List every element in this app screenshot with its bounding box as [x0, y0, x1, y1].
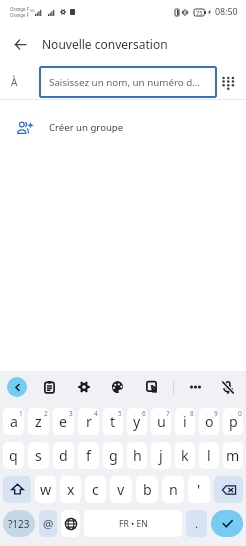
staticText: t [110, 412, 116, 431]
staticText: Saisissez un nom, un numéro d… [49, 76, 201, 89]
button[interactable]: d [53, 442, 74, 469]
button[interactable] [211, 510, 243, 537]
staticText: 3 [69, 409, 73, 418]
staticText: 2 [44, 409, 48, 418]
button[interactable]: Settings [74, 377, 94, 397]
button[interactable]: Microphone off [218, 377, 238, 397]
button[interactable]: ?123 [3, 510, 35, 537]
staticText: q [9, 446, 18, 465]
staticText: . [195, 516, 199, 532]
staticText: z [35, 412, 42, 431]
staticText: ?123 [8, 517, 30, 531]
button[interactable] [3, 476, 31, 503]
button[interactable]: v [110, 476, 132, 503]
staticText: f [86, 446, 91, 465]
staticText: FR • EN [119, 518, 148, 530]
button[interactable]: y [127, 408, 147, 435]
staticText: g [109, 446, 118, 465]
staticText: 1 [19, 409, 23, 418]
button[interactable]: . [186, 510, 207, 537]
staticText: l [207, 446, 211, 465]
button[interactable]: g [103, 442, 123, 469]
staticText: 4 [94, 409, 98, 418]
staticText: e [59, 412, 68, 431]
button[interactable]: f [78, 442, 99, 469]
button[interactable]: Back [6, 30, 34, 58]
staticText: x [67, 480, 75, 499]
staticText: 75 [196, 9, 203, 16]
staticText: o [205, 412, 214, 431]
button[interactable]: a [3, 408, 24, 435]
staticText: 9 [214, 409, 218, 418]
button[interactable]: p [223, 408, 243, 435]
button[interactable]: b [136, 476, 158, 503]
button[interactable]: Themes [107, 377, 127, 397]
staticText: Orange F [10, 6, 29, 12]
button[interactable]: j [151, 442, 171, 469]
button[interactable]: Créer un groupe [0, 100, 246, 154]
staticText: Nouvelle conversation [42, 36, 168, 52]
button[interactable]: Collapse toolbar [7, 377, 27, 397]
staticText: 0 [238, 409, 242, 418]
button[interactable]: e [53, 408, 74, 435]
button[interactable]: FR • EN [84, 510, 182, 537]
button[interactable]: l [199, 442, 219, 469]
staticText: m [226, 446, 240, 465]
button[interactable]: More options [185, 377, 205, 397]
button[interactable]: t [103, 408, 123, 435]
button[interactable]: x [60, 476, 81, 503]
button[interactable]: h [127, 442, 147, 469]
button[interactable]: z [28, 408, 49, 435]
staticText: j [159, 446, 163, 465]
button[interactable]: q [3, 442, 24, 469]
staticText: 6 [142, 409, 146, 418]
staticText: À [11, 75, 18, 89]
staticText: 7 [166, 409, 170, 418]
staticText: p [229, 412, 238, 431]
staticText: c [92, 480, 99, 499]
button[interactable] [214, 476, 243, 503]
staticText: u [157, 412, 166, 431]
staticText: r [86, 412, 92, 431]
staticText: 5G [30, 8, 35, 13]
button[interactable]: Clipboard [39, 377, 59, 397]
button[interactable]: Sticker [141, 377, 161, 397]
staticText: n [169, 480, 178, 499]
staticText: w [40, 480, 52, 499]
staticText: @ [43, 516, 54, 532]
button[interactable]: s [28, 442, 49, 469]
button[interactable]: u [151, 408, 171, 435]
staticText: d [59, 446, 68, 465]
staticText: Orange F [10, 12, 29, 18]
staticText: 8 [190, 409, 194, 418]
staticText: v [117, 480, 125, 499]
button[interactable]: n [162, 476, 184, 503]
button[interactable]: ' [188, 476, 210, 503]
staticText: s [35, 446, 42, 465]
staticText: y [133, 412, 141, 431]
staticText: a [10, 412, 18, 431]
staticText: b [143, 480, 152, 499]
button[interactable]: c [85, 476, 106, 503]
button[interactable]: @ [39, 510, 57, 537]
button[interactable]: r [78, 408, 99, 435]
button[interactable]: i [175, 408, 195, 435]
staticText: ' [197, 480, 201, 499]
staticText: k [181, 446, 189, 465]
button[interactable]: Dialpad [216, 71, 238, 93]
button[interactable] [61, 510, 80, 537]
button[interactable]: Saisissez un nom, un numéro d… [39, 66, 217, 98]
staticText: i [183, 412, 187, 431]
staticText: 5 [118, 409, 122, 418]
staticText: Créer un groupe [49, 121, 124, 134]
button[interactable]: k [175, 442, 195, 469]
staticText: 08:50 [215, 6, 238, 18]
button[interactable]: w [35, 476, 56, 503]
button[interactable]: o [199, 408, 219, 435]
button[interactable]: m [223, 442, 243, 469]
staticText: h [133, 446, 142, 465]
